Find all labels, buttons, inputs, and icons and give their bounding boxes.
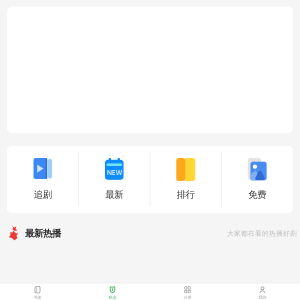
- button[interactable]: 我的: [225, 283, 300, 300]
- staticText: 大家都在看的热播好剧: [227, 229, 297, 238]
- button[interactable]: 追剧: [7, 146, 78, 213]
- staticText: 书架: [33, 295, 41, 300]
- staticText: NEW: [107, 168, 122, 177]
- staticText: 最新热播: [25, 228, 61, 239]
- button[interactable]: 分类: [150, 283, 225, 300]
- button[interactable]: NEW: [78, 146, 150, 213]
- staticText: 最新: [105, 189, 123, 200]
- button[interactable]: 免费: [221, 146, 293, 213]
- staticText: 追剧: [34, 189, 52, 200]
- button[interactable]: 精选: [75, 283, 150, 300]
- staticText: 分类: [183, 295, 191, 300]
- button[interactable]: 排行: [150, 146, 221, 213]
- staticText: 我的: [258, 295, 266, 300]
- staticText: 排行: [177, 189, 195, 200]
- staticText: 免费: [248, 189, 266, 200]
- staticText: 精选: [108, 295, 116, 300]
- button[interactable]: 书架: [0, 283, 75, 300]
